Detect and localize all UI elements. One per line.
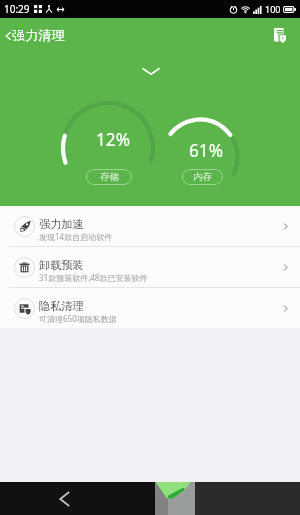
staticText: 可清理650项隐私数据 [39, 313, 117, 324]
button[interactable]: 隐私清理 [0, 288, 300, 328]
button[interactable]: 强力清理 [0, 25, 73, 46]
button[interactable]: 内存 [182, 169, 223, 185]
button[interactable]: 卸载预装 [0, 247, 300, 287]
staticText: 61% [189, 139, 223, 162]
button[interactable]: 强力加速 [0, 206, 300, 246]
button[interactable]: Back [46, 482, 82, 515]
staticText: 31款预装软件,48款已安装软件 [39, 272, 148, 283]
button[interactable]: 存储 [86, 169, 132, 185]
staticText: 卸载预装 [39, 258, 84, 272]
staticText: 10:29 [4, 2, 30, 16]
staticText: 存储 [100, 171, 119, 183]
staticText: 100 [265, 3, 281, 15]
button[interactable]: Home [155, 482, 195, 515]
staticText: 12% [96, 128, 130, 151]
staticText: 强力加速 [39, 217, 84, 231]
staticText: 内存 [193, 171, 212, 183]
button[interactable]: Expand [140, 60, 162, 82]
staticText: 强力清理 [12, 27, 65, 44]
staticText: 发现14款自启动软件 [39, 231, 113, 242]
staticText: 隐私清理 [39, 299, 84, 313]
button[interactable]: Report [269, 24, 291, 46]
